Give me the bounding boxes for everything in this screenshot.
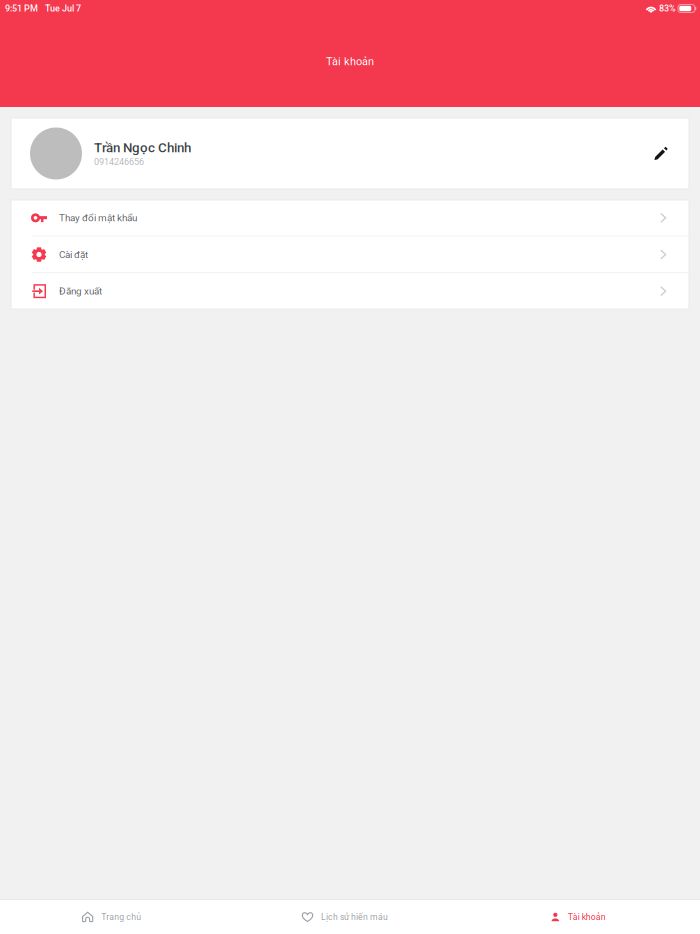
- staticText: Đăng xuất: [59, 285, 102, 297]
- button[interactable]: Cài đặt: [11, 237, 689, 272]
- button[interactable]: Tài khoản: [467, 899, 700, 934]
- button[interactable]: Trần Ngọc Chinh: [11, 118, 689, 189]
- staticText: Trần Ngọc Chinh: [94, 140, 191, 155]
- staticText: Tài khoản: [568, 912, 606, 922]
- button[interactable]: Lịch sử hiến máu: [233, 899, 467, 934]
- staticText: Tài khoản: [326, 55, 374, 68]
- staticText: Cài đặt: [59, 249, 88, 260]
- staticText: Thay đổi mật khẩu: [59, 212, 137, 224]
- staticText: Lịch sử hiến máu: [321, 912, 388, 922]
- staticText: 83%: [659, 3, 676, 14]
- staticText: Trang chủ: [101, 912, 141, 922]
- button[interactable]: Trang chủ: [0, 899, 233, 934]
- button[interactable]: Thay đổi mật khẩu: [11, 200, 689, 236]
- button[interactable]: Đăng xuất: [11, 273, 689, 309]
- staticText: 9:51 PM: [5, 3, 38, 14]
- staticText: 0914246656: [94, 156, 144, 167]
- staticText: Tue Jul 7: [45, 3, 81, 14]
